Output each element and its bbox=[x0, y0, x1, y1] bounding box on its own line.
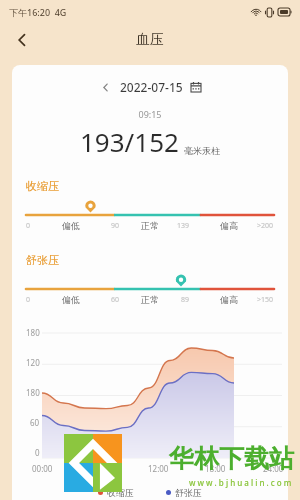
staticText: 09:15 bbox=[12, 108, 288, 120]
button[interactable]: 舒张压 bbox=[166, 487, 202, 498]
staticText: 偏高 bbox=[220, 220, 238, 231]
staticText: 下午16:20 4G bbox=[9, 6, 67, 18]
staticText: 0 bbox=[26, 295, 31, 305]
staticText: 00:00 bbox=[32, 463, 53, 474]
staticText: 120 bbox=[26, 357, 40, 368]
staticText: 正常 bbox=[141, 220, 159, 231]
staticText: 舒张压 bbox=[175, 487, 202, 498]
staticText: 0 bbox=[35, 447, 40, 458]
staticText: 偏低 bbox=[62, 294, 80, 305]
staticText: 正常 bbox=[141, 294, 159, 305]
staticText: 收缩压 bbox=[26, 179, 59, 193]
button[interactable]: Previous day bbox=[96, 78, 114, 96]
staticText: 收缩压 bbox=[107, 487, 134, 498]
staticText: 139 bbox=[177, 221, 190, 231]
staticText: 60 bbox=[111, 295, 120, 305]
staticText: 血压 bbox=[136, 31, 164, 49]
button[interactable]: Pick date bbox=[188, 79, 204, 95]
staticText: 0 bbox=[26, 221, 31, 231]
staticText: 180 bbox=[26, 327, 40, 338]
staticText: 24:00 bbox=[263, 463, 284, 474]
button[interactable]: Back bbox=[8, 26, 36, 54]
button[interactable]: 收缩压 bbox=[98, 487, 134, 498]
staticText: 偏低 bbox=[62, 220, 80, 231]
staticText: >150 bbox=[257, 295, 274, 305]
staticText: 华林下载站 bbox=[169, 443, 294, 474]
staticText: 90 bbox=[111, 221, 120, 231]
staticText: 毫米汞柱 bbox=[184, 145, 220, 156]
staticText: 193/152 bbox=[80, 124, 179, 159]
staticText: >200 bbox=[257, 221, 274, 231]
staticText: 60 bbox=[30, 417, 40, 428]
staticText: 180 bbox=[26, 387, 40, 398]
staticText: 2022-07-15 bbox=[120, 79, 183, 95]
staticText: 18:00 bbox=[205, 463, 226, 474]
staticText: 12:00 bbox=[148, 463, 169, 474]
staticText: 89 bbox=[181, 295, 190, 305]
staticText: w w w . b j h u a l i n . c o m bbox=[189, 477, 292, 488]
staticText: 06:00 bbox=[90, 463, 111, 474]
staticText: 舒张压 bbox=[26, 253, 59, 267]
staticText: 偏高 bbox=[220, 294, 238, 305]
